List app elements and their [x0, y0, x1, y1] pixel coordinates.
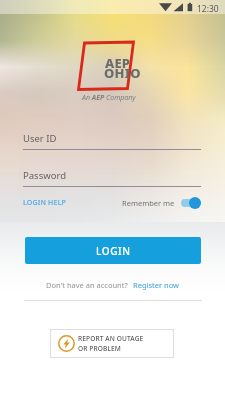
staticText: REPORT AN OUTAGE: [78, 334, 144, 343]
staticText: LOGIN HELP: [23, 198, 67, 208]
button[interactable]: LOGIN: [25, 237, 201, 264]
staticText: 12:30: [197, 3, 219, 15]
staticText: LOGIN: [96, 244, 131, 258]
button[interactable]: User ID: [23, 132, 201, 150]
staticText: Password: [23, 169, 66, 182]
button[interactable]: Register now: [133, 280, 179, 290]
staticText: OHIO: [104, 64, 141, 82]
button[interactable]: LOGIN HELP: [23, 198, 67, 208]
button[interactable]: REPORT AN OUTAGE: [50, 329, 174, 358]
staticText: User ID: [23, 132, 57, 145]
button[interactable]: Password: [23, 169, 201, 187]
button[interactable]: Remember me: [122, 197, 201, 209]
staticText: An AEP Company: [82, 93, 136, 103]
staticText: AEP: [105, 54, 131, 72]
staticText: Remember me: [122, 198, 175, 208]
staticText: Don't have an account?: [46, 280, 128, 290]
staticText: OR PROBLEM: [78, 344, 121, 353]
staticText: Register now: [133, 280, 179, 290]
